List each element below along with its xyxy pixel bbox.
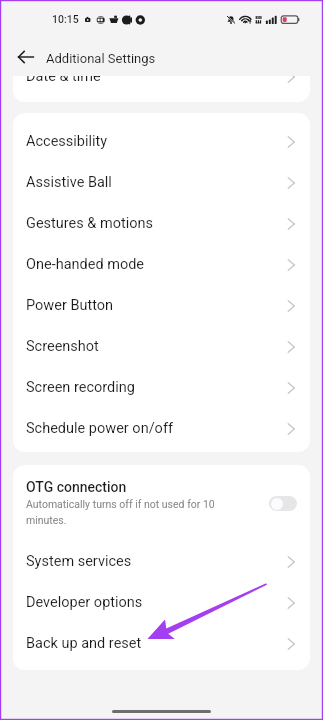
staticText: Schedule power on/off xyxy=(26,420,173,437)
button[interactable]: OTG connection xyxy=(13,465,310,541)
staticText: Assistive Ball xyxy=(26,174,112,191)
staticText: Gestures & motions xyxy=(26,215,153,232)
button[interactable]: System services xyxy=(13,541,310,582)
staticText: Screenshot xyxy=(26,338,99,355)
button[interactable]: Screen recording xyxy=(13,367,310,408)
staticText: Back up and reset xyxy=(26,635,142,652)
button[interactable]: Power Button xyxy=(13,285,310,326)
staticText: OTG connection xyxy=(26,479,127,495)
staticText: Accessibility xyxy=(26,133,108,150)
button[interactable]: Back up and reset xyxy=(13,623,310,664)
button[interactable]: OTG connection toggle xyxy=(269,496,297,511)
staticText: Automatically turns off if not used for … xyxy=(26,498,224,527)
staticText: One-handed mode xyxy=(26,256,145,273)
staticText: 10:15 xyxy=(52,13,79,25)
button[interactable]: Developer options xyxy=(13,582,310,623)
button[interactable]: Schedule power on/off xyxy=(13,408,310,449)
button[interactable]: Gestures & motions xyxy=(13,203,310,244)
staticText: Date & time xyxy=(26,68,101,85)
button[interactable]: One-handed mode xyxy=(13,244,310,285)
staticText: System services xyxy=(26,553,132,570)
staticText: Power Button xyxy=(26,297,114,314)
button[interactable]: Accessibility xyxy=(13,121,310,162)
button[interactable]: Back xyxy=(8,39,44,75)
staticText: Screen recording xyxy=(26,379,135,396)
button[interactable]: Screenshot xyxy=(13,326,310,367)
staticText: Additional Settings xyxy=(46,51,156,66)
staticText: Developer options xyxy=(26,594,143,611)
button[interactable]: Date & time xyxy=(13,56,310,102)
button[interactable]: Assistive Ball xyxy=(13,162,310,203)
